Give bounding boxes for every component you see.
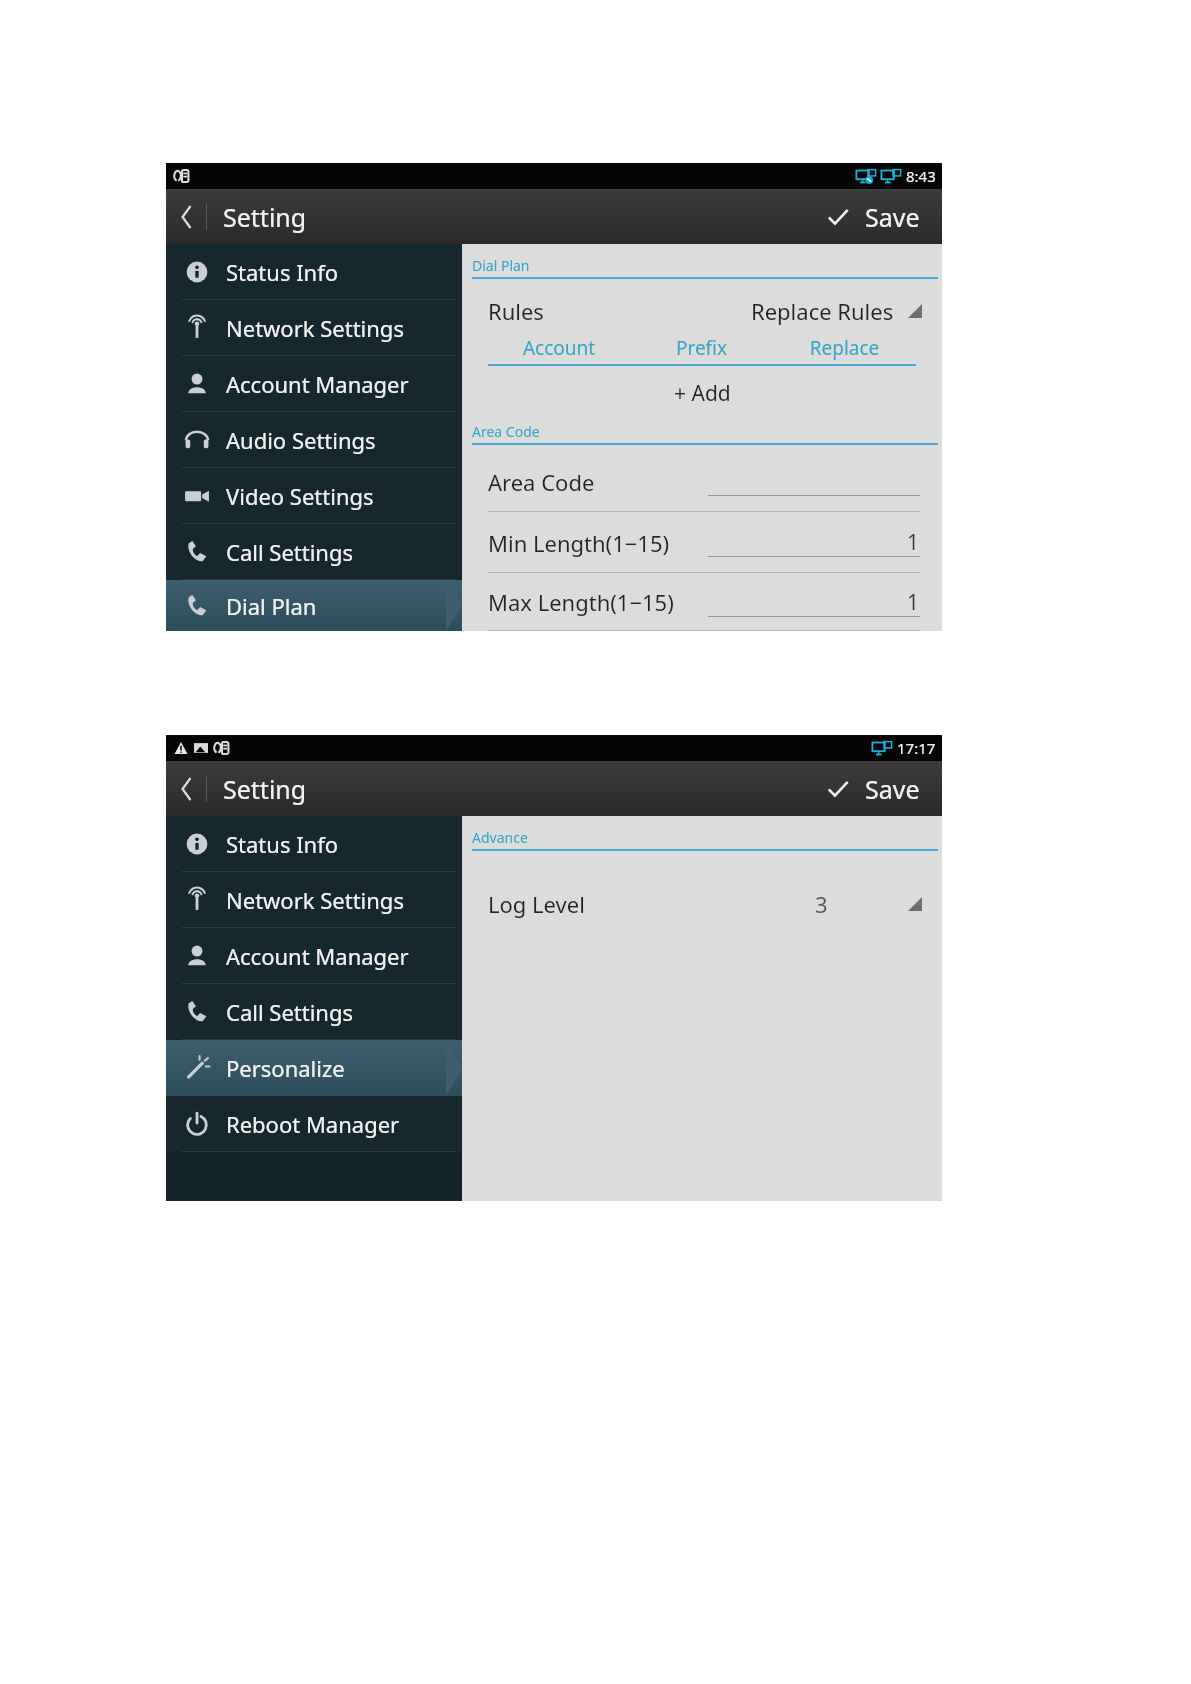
button[interactable]: Save [815,766,942,812]
staticText: Reboot Manager [226,1109,400,1139]
button[interactable]: Reboot Manager [166,1096,462,1152]
staticText: Prefix [630,335,773,361]
staticText: Area Code [488,467,595,497]
staticText: Call Settings [226,997,354,1027]
button[interactable]: Min Length(1−15) [462,512,942,573]
staticText: + Add [674,379,731,408]
button[interactable]: Rules [462,287,942,335]
staticText: Dial Plan [226,591,317,621]
staticText: Status Info [226,829,339,859]
button[interactable]: Account Manager [166,356,462,412]
staticText: Network Settings [226,313,404,343]
button[interactable]: Max Length(1−15) [462,573,942,631]
staticText: Replace [773,335,916,361]
staticText: Network Settings [226,885,404,915]
staticText: Rules [488,296,544,326]
staticText: 1 [907,528,920,557]
button[interactable]: Area Code [462,451,942,512]
staticText: Account Manager [226,941,409,971]
staticText: 17:17 [897,738,936,758]
button[interactable]: Call Settings [166,524,462,580]
staticText: Max Length(1−15) [488,587,674,617]
staticText: Setting [223,772,307,806]
button[interactable]: Network Settings [166,300,462,356]
button[interactable]: Network Settings [166,872,462,928]
staticText: 1 [907,588,920,617]
staticText: Setting [223,200,307,234]
staticText: Advance [472,828,528,847]
staticText: Audio Settings [226,425,376,455]
button[interactable]: Save [815,194,942,240]
button[interactable]: Audio Settings [166,412,462,468]
button[interactable]: Back [166,194,315,240]
button[interactable]: Account Manager [166,928,462,984]
staticText: Status Info [226,257,339,287]
staticText: Area Code [472,422,540,441]
button[interactable]: Call Settings [166,984,462,1040]
staticText: 8:43 [906,166,936,186]
staticText: 3 [815,889,828,919]
button[interactable]: Dial Plan [166,580,462,631]
button[interactable]: + Add [462,376,942,410]
staticText: Video Settings [226,481,374,511]
button[interactable]: Log Level [462,879,942,929]
staticText: Call Settings [226,537,354,567]
staticText: Save [865,772,920,806]
staticText: Account [488,335,630,361]
staticText: Log Level [488,889,585,919]
button[interactable]: Video Settings [166,468,462,524]
staticText: Personalize [226,1053,345,1083]
staticText: Dial Plan [472,256,530,275]
staticText: Account Manager [226,369,409,399]
button[interactable]: Personalize [166,1040,462,1096]
button[interactable]: Back [166,766,315,812]
staticText: Save [865,200,920,234]
staticText: Replace Rules [751,296,894,326]
button[interactable]: Status Info [166,244,462,300]
staticText: Min Length(1−15) [488,528,670,558]
button[interactable]: Status Info [166,816,462,872]
